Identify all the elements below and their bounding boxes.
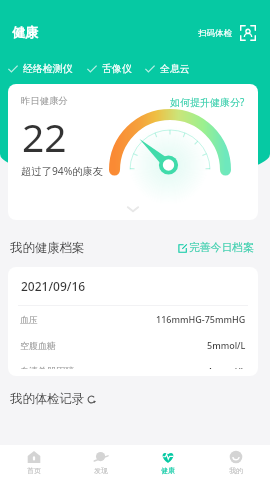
button[interactable]: 经络检测仪	[8, 59, 73, 77]
staticText: 22	[22, 110, 67, 163]
button[interactable]: 发现	[67, 447, 134, 478]
staticText: 5mmol/L	[207, 339, 246, 351]
staticText: 昨日健康分	[21, 95, 68, 107]
button[interactable]: 我的	[202, 447, 270, 478]
staticText: 扫码体检	[198, 28, 232, 39]
staticText: 116mmHG-75mmHG	[156, 313, 246, 325]
staticText: 我的	[229, 466, 243, 475]
staticText: 舌像仪	[102, 62, 132, 74]
button[interactable]: 舌像仪	[87, 59, 132, 77]
staticText: 血压	[20, 314, 38, 325]
staticText: 全息云	[160, 62, 190, 74]
staticText: 健康	[12, 24, 38, 40]
button[interactable]: 完善今日档案	[178, 241, 254, 255]
staticText: 超过了94%的康友	[21, 164, 104, 178]
button[interactable]: 如何提升健康分?	[170, 95, 245, 109]
other: 刷新	[87, 395, 96, 404]
staticText: 我的体检记录	[10, 391, 85, 407]
staticText: 经络检测仪	[23, 62, 73, 74]
staticText: 完善今日档案	[189, 241, 254, 255]
button[interactable]: 扫码体检	[198, 25, 256, 41]
staticText: 发现	[94, 466, 108, 475]
staticText: 血清总胆固醇	[20, 365, 74, 369]
staticText: 2021/09/16	[21, 278, 86, 294]
button[interactable]: 全息云	[145, 59, 190, 77]
button[interactable]: 血清总胆固醇	[8, 358, 258, 376]
staticText: 健康	[161, 466, 175, 475]
staticText: 4mmol/L	[207, 365, 246, 369]
other: 扫码体检	[240, 25, 256, 41]
button[interactable]: 首页	[0, 447, 67, 478]
button[interactable]: 健康	[134, 447, 202, 478]
staticText: 空腹血糖	[20, 340, 56, 351]
staticText: 首页	[27, 466, 41, 475]
button[interactable]: 空腹血糖	[8, 332, 258, 358]
button[interactable]: 血压	[8, 306, 258, 332]
staticText: 我的健康档案	[10, 240, 85, 256]
